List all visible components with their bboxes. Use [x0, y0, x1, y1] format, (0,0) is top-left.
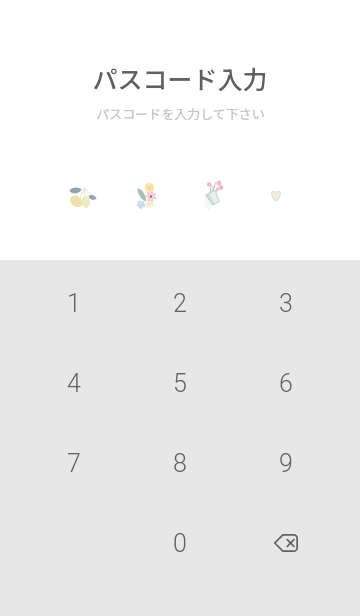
button[interactable]: 0 — [127, 503, 233, 583]
button[interactable]: 9 — [233, 423, 339, 503]
staticText: パスコード入力 — [92, 60, 268, 96]
button[interactable]: 1 — [21, 263, 127, 343]
button[interactable]: Delete last digit — [233, 503, 339, 583]
staticText: 7 — [67, 449, 81, 478]
button[interactable]: 2 — [127, 263, 233, 343]
button[interactable]: 5 — [127, 343, 233, 423]
staticText: 3 — [279, 289, 293, 318]
staticText: 2 — [173, 289, 187, 318]
staticText: 1 — [67, 289, 81, 318]
button[interactable]: 6 — [233, 343, 339, 423]
staticText: 5 — [173, 369, 187, 398]
staticText: 9 — [279, 449, 293, 478]
staticText: 0 — [173, 529, 187, 558]
staticText: 4 — [67, 369, 81, 398]
button[interactable]: 4 — [21, 343, 127, 423]
staticText: 6 — [279, 369, 293, 398]
button[interactable]: 7 — [21, 423, 127, 503]
staticText: 8 — [173, 449, 187, 478]
staticText: パスコードを入力して下さい — [96, 104, 265, 123]
button[interactable]: 8 — [127, 423, 233, 503]
button[interactable]: 3 — [233, 263, 339, 343]
